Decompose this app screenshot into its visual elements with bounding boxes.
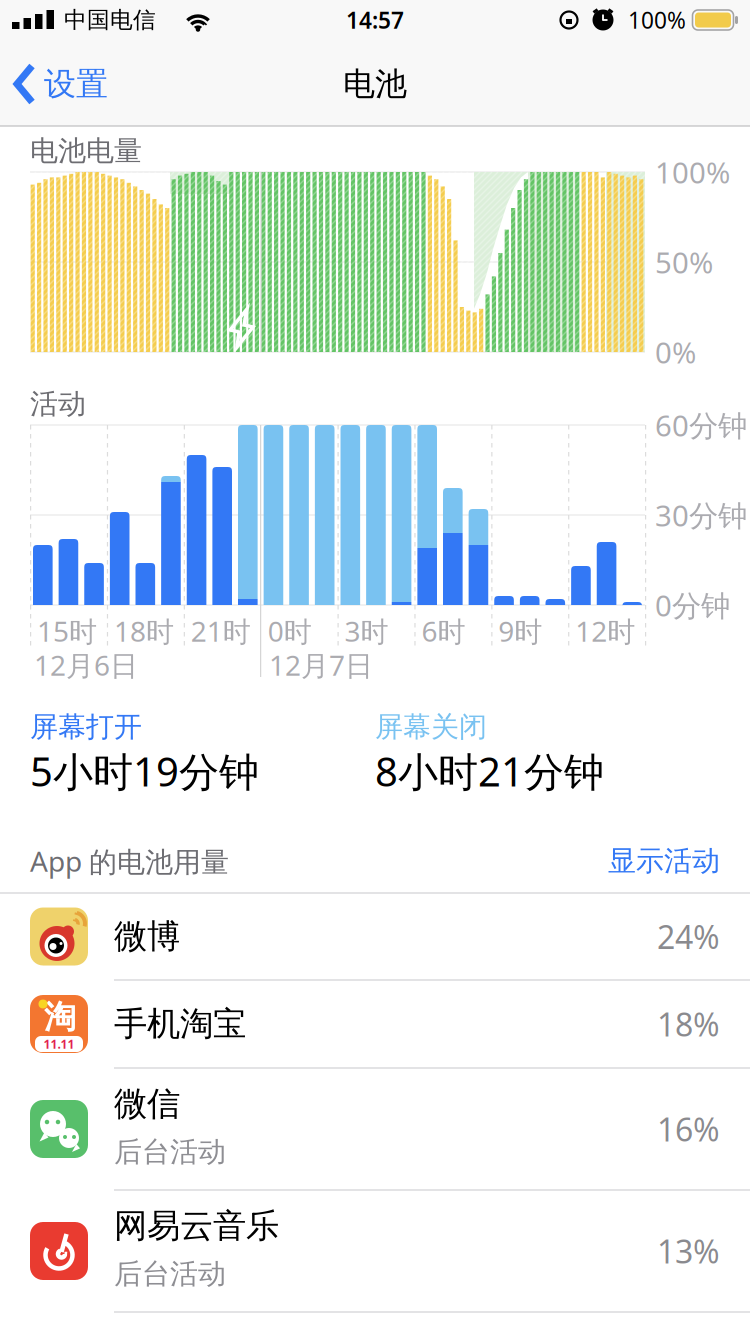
staticText: 显示活动 <box>608 844 720 878</box>
button[interactable]: 淘 <box>0 980 750 1068</box>
staticText: 50% <box>655 242 713 281</box>
staticText: 0时 <box>268 612 312 650</box>
button[interactable]: 微博 <box>0 893 750 980</box>
staticText: App 的电池用量 <box>30 842 229 880</box>
staticText: 100% <box>628 5 686 35</box>
staticText: 9时 <box>498 612 542 650</box>
staticText: 3时 <box>344 612 388 650</box>
staticText: 5小时19分钟 <box>30 744 259 797</box>
staticText: 60分钟 <box>655 405 747 444</box>
staticText: 微信 <box>114 1083 180 1124</box>
staticText: 15时 <box>37 612 97 650</box>
staticText: 18% <box>657 1003 720 1045</box>
button[interactable]: 显示活动 <box>608 844 720 878</box>
staticText: 12月6日 <box>34 646 138 684</box>
staticText: 0分钟 <box>655 585 730 624</box>
staticText: 屏幕关闭 <box>375 710 487 744</box>
button[interactable]: 返回设置 <box>0 42 180 126</box>
staticText: 手机淘宝 <box>114 1003 246 1044</box>
staticText: 8小时21分钟 <box>375 744 604 797</box>
staticText: 13% <box>657 1230 720 1272</box>
staticText: 100% <box>655 152 730 191</box>
button[interactable]: 网易云音乐 <box>0 1190 750 1312</box>
staticText: 中国电信 <box>64 6 156 34</box>
staticText: 电池电量 <box>30 134 142 168</box>
staticText: 16% <box>657 1108 720 1150</box>
staticText: 14:57 <box>346 5 404 35</box>
staticText: 6时 <box>421 612 465 650</box>
staticText: 12时 <box>575 612 635 650</box>
staticText: 活动 <box>30 387 86 421</box>
staticText: 30分钟 <box>655 495 747 534</box>
staticText: 屏幕打开 <box>30 710 142 744</box>
button[interactable]: 微信 <box>0 1068 750 1190</box>
staticText: 电池 <box>343 64 407 104</box>
staticText: 24% <box>657 915 720 958</box>
staticText: 11.11 <box>43 1036 74 1052</box>
staticText: 12月7日 <box>269 646 373 684</box>
staticText: 后台活动 <box>114 1257 226 1291</box>
staticText: 淘 <box>44 997 76 1037</box>
staticText: 18时 <box>114 612 174 650</box>
staticText: 21时 <box>191 612 251 650</box>
staticText: 微博 <box>114 916 180 957</box>
staticText: 后台活动 <box>114 1135 226 1169</box>
staticText: 设置 <box>44 64 108 104</box>
staticText: 0% <box>655 332 696 371</box>
staticText: 网易云音乐 <box>114 1205 279 1246</box>
